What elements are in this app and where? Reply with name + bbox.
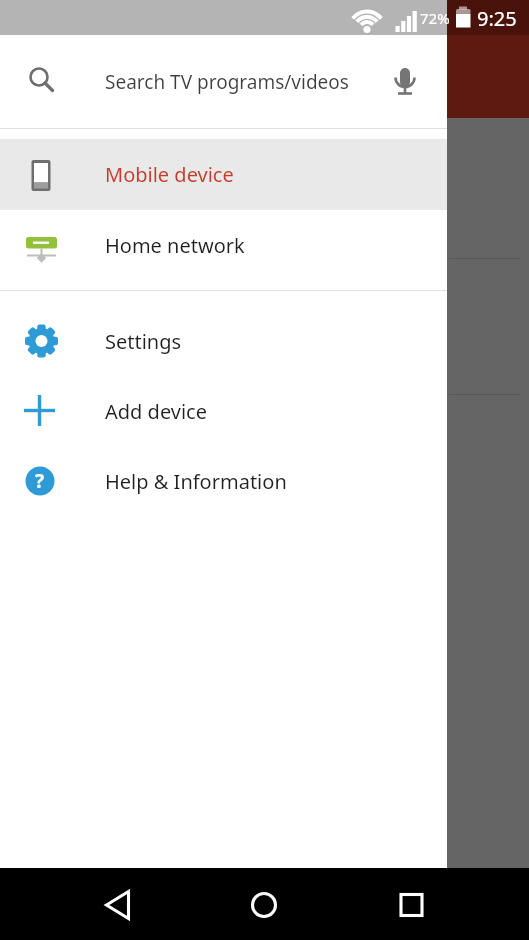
button[interactable]: [0, 376, 447, 446]
staticText: 9:25: [477, 5, 517, 32]
button[interactable]: [0, 35, 447, 128]
staticText: Mobile device: [105, 161, 234, 188]
button[interactable]: [96, 883, 140, 927]
staticText: ?: [35, 468, 45, 494]
staticText: Add device: [105, 398, 207, 425]
button[interactable]: Mobile device: [105, 139, 447, 210]
staticText: Help & Information: [105, 468, 287, 495]
staticText: Home network: [105, 232, 245, 259]
button[interactable]: [242, 883, 286, 927]
button[interactable]: [0, 210, 447, 281]
button[interactable]: [389, 883, 433, 927]
staticText: Settings: [105, 328, 182, 355]
staticText: 72%: [420, 8, 450, 28]
staticText: Search TV programs/videos: [105, 69, 349, 95]
button[interactable]: [0, 306, 447, 376]
button[interactable]: [0, 139, 447, 210]
button[interactable]: [0, 446, 447, 516]
